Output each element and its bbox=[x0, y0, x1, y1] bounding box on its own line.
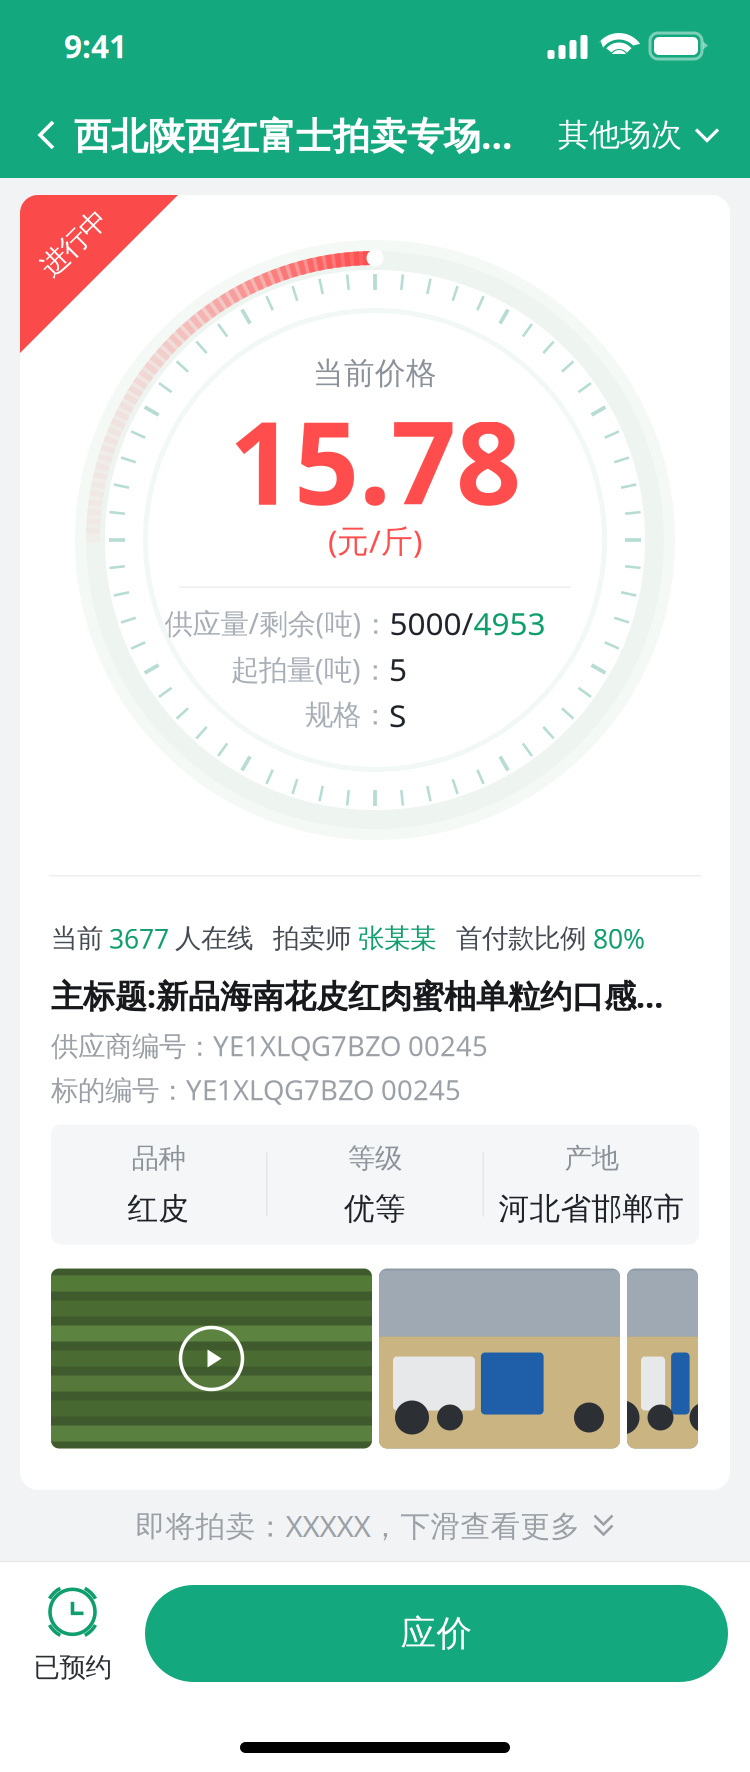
staticText: 已预约 bbox=[33, 1651, 111, 1684]
staticText: 其他场次 bbox=[558, 115, 682, 154]
staticText: 供应量/剩余(吨)： bbox=[164, 604, 389, 642]
button[interactable]: 图片 bbox=[627, 1268, 698, 1448]
staticText: 主标题:新品海南花皮红肉蜜柚单粒约口感… bbox=[51, 974, 663, 1017]
staticText: 9:41 bbox=[64, 24, 127, 67]
staticText: 5 bbox=[389, 647, 407, 690]
staticText: / bbox=[461, 601, 473, 644]
staticText: 首付款比例 bbox=[456, 922, 586, 955]
staticText: 4953 bbox=[473, 601, 545, 644]
staticText: S bbox=[389, 693, 406, 736]
staticText: 进行中 bbox=[33, 226, 114, 260]
staticText: 3677 bbox=[109, 920, 169, 956]
staticText: 80% bbox=[593, 920, 645, 956]
staticText: 人在线 bbox=[175, 922, 253, 955]
button[interactable]: 图片 bbox=[379, 1268, 620, 1448]
staticText: 15.78 bbox=[229, 383, 521, 538]
staticText: 张某某 bbox=[358, 922, 436, 955]
staticText: 红皮 bbox=[127, 1190, 189, 1228]
button[interactable]: 应价 bbox=[145, 1585, 728, 1682]
button[interactable]: 已预约 bbox=[16, 1576, 129, 1691]
button[interactable]: 其他场次 bbox=[548, 92, 750, 178]
staticText: 即将拍卖：XXXXX，下滑查看更多 bbox=[135, 1505, 580, 1546]
button[interactable]: 播放视频 bbox=[51, 1268, 372, 1448]
button[interactable]: 返回 bbox=[0, 92, 74, 178]
staticText: 规格： bbox=[305, 697, 389, 733]
staticText: 河北省邯郸市 bbox=[498, 1190, 684, 1228]
staticText: 品种 bbox=[131, 1141, 185, 1176]
staticText: 等级 bbox=[348, 1141, 402, 1176]
staticText: 供应商编号：YE1XLQG7BZO 00245 bbox=[51, 1027, 488, 1064]
staticText: 当前 bbox=[51, 922, 103, 955]
staticText: 当前价格 bbox=[313, 354, 437, 392]
staticText: 拍卖师 bbox=[273, 922, 351, 955]
staticText: 应价 bbox=[400, 1611, 472, 1656]
button[interactable]: 即将拍卖：XXXXX，下滑查看更多 bbox=[0, 1490, 750, 1561]
staticText: 西北陕西红富士拍卖专场… bbox=[74, 110, 512, 160]
staticText: 5000 bbox=[389, 601, 461, 644]
staticText: (元/斤) bbox=[328, 519, 422, 562]
staticText: 起拍量(吨)： bbox=[231, 650, 389, 688]
staticText: 标的编号：YE1XLQG7BZO 00245 bbox=[51, 1071, 461, 1108]
staticText: 优等 bbox=[344, 1190, 406, 1228]
staticText: 产地 bbox=[564, 1141, 618, 1176]
